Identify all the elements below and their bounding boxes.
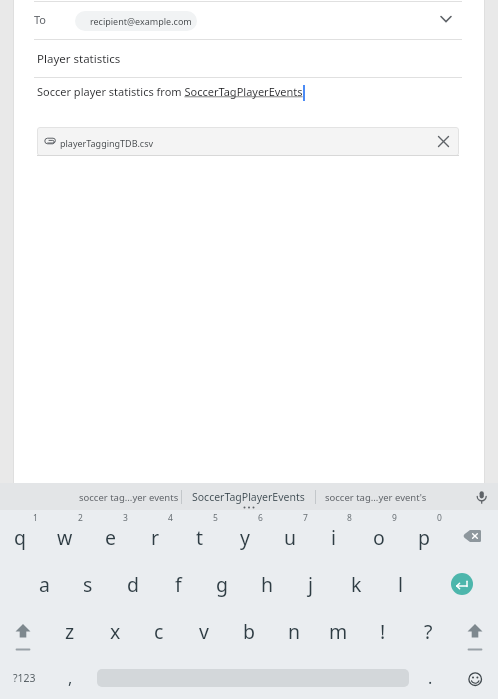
button[interactable]: q	[0, 517, 40, 557]
staticText: q	[14, 524, 26, 551]
button[interactable]: g	[202, 564, 242, 604]
button[interactable]: ?	[408, 611, 448, 651]
button[interactable]	[451, 573, 473, 595]
button[interactable]: l	[381, 564, 421, 604]
staticText: .	[428, 667, 433, 689]
staticText: t	[196, 524, 204, 551]
staticText: e	[105, 524, 116, 551]
staticText: To	[34, 12, 47, 27]
button[interactable]	[37, 127, 459, 156]
button[interactable]: k	[336, 564, 376, 604]
staticText: k	[351, 571, 362, 598]
button[interactable]: .	[418, 666, 442, 690]
button[interactable]: e	[90, 517, 130, 557]
button[interactable]: h	[247, 564, 287, 604]
button[interactable]: x	[95, 611, 135, 651]
staticText: c	[154, 618, 164, 645]
button[interactable]: b	[229, 611, 269, 651]
staticText: playerTaggingTDB.csv	[60, 137, 154, 149]
staticText: Player statistics	[37, 51, 121, 67]
button[interactable]: c	[139, 611, 179, 651]
staticText: s	[83, 571, 93, 598]
button[interactable]: f	[158, 564, 198, 604]
button[interactable]	[467, 622, 483, 652]
staticText: l	[398, 571, 404, 598]
button[interactable]: w	[45, 517, 85, 557]
staticText: p	[418, 524, 430, 551]
button[interactable]: i	[314, 517, 354, 557]
button[interactable]: v	[184, 611, 224, 651]
staticText: ?	[424, 618, 433, 645]
button[interactable]	[437, 135, 450, 148]
button[interactable]: z	[50, 611, 90, 651]
staticText: 0	[437, 512, 442, 524]
staticText: w	[57, 524, 73, 551]
button[interactable]	[474, 489, 489, 505]
button[interactable]	[440, 15, 452, 24]
button[interactable]: d	[113, 564, 153, 604]
button[interactable]: o	[359, 517, 399, 557]
button[interactable]: !	[363, 611, 403, 651]
button[interactable]: n	[274, 611, 314, 651]
staticText: 5	[213, 512, 218, 524]
staticText: SoccerTagPlayerEvents	[192, 490, 305, 504]
staticText: 4	[168, 512, 173, 524]
button[interactable]: a	[24, 564, 64, 604]
staticText: d	[127, 571, 139, 598]
staticText: r	[151, 524, 160, 551]
staticText: m	[329, 618, 348, 645]
staticText: x	[110, 618, 121, 645]
staticText: 1	[33, 512, 38, 524]
button[interactable]	[468, 672, 483, 687]
button[interactable]: s	[68, 564, 108, 604]
staticText: u	[284, 524, 297, 551]
staticText: 2	[78, 512, 83, 524]
button[interactable]: y	[225, 517, 265, 557]
staticText: 6	[258, 512, 263, 524]
button[interactable]: p	[404, 517, 444, 557]
button[interactable]: soccer tag...yer event's	[311, 488, 441, 506]
staticText: a	[39, 571, 50, 598]
staticText: i	[331, 524, 337, 551]
button[interactable]: soccer tag...yer events	[64, 488, 194, 506]
button[interactable]: ?123	[4, 668, 44, 688]
staticText: Soccer player statistics from SoccerTagP…	[37, 84, 303, 99]
staticText: soccer tag...yer event's	[325, 491, 427, 504]
button[interactable]: r	[135, 517, 175, 557]
button[interactable]: m	[318, 611, 358, 651]
staticText: o	[373, 524, 385, 551]
staticText: n	[288, 618, 301, 645]
staticText: y	[240, 524, 250, 551]
staticText: !	[380, 618, 386, 645]
button[interactable]: SoccerTagPlayerEvents	[183, 488, 313, 506]
button[interactable]	[15, 622, 31, 652]
staticText: ,	[68, 667, 73, 689]
staticText: 7	[303, 512, 308, 524]
staticText: 3	[123, 512, 128, 524]
button[interactable]: ,	[58, 666, 82, 690]
staticText: h	[261, 571, 274, 598]
staticText: recipient@example.com	[90, 15, 192, 27]
staticText: f	[175, 571, 182, 598]
staticText: 8	[347, 512, 352, 524]
staticText: soccer tag...yer events	[79, 491, 179, 504]
staticText: g	[216, 571, 228, 598]
button[interactable]	[465, 530, 481, 542]
button[interactable]: j	[291, 564, 331, 604]
button[interactable]: u	[270, 517, 310, 557]
staticText: b	[243, 618, 255, 645]
staticText: ?123	[13, 671, 36, 685]
button[interactable]: t	[180, 517, 220, 557]
staticText: 9	[392, 512, 397, 524]
button[interactable]: recipient@example.com	[75, 11, 197, 31]
staticText: v	[199, 618, 209, 645]
staticText: z	[65, 618, 75, 645]
staticText: j	[308, 571, 314, 598]
